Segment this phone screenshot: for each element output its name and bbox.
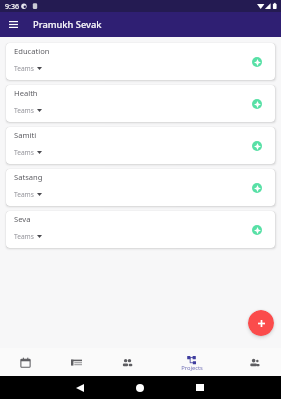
button[interactable]: Add team	[252, 99, 262, 109]
button[interactable]: Education	[6, 43, 275, 80]
button[interactable]: Home	[130, 376, 150, 399]
staticText: Health	[14, 88, 38, 98]
staticText: Pramukh Sevak	[33, 18, 102, 31]
staticText: Teams	[14, 64, 34, 73]
staticText: Teams	[14, 148, 34, 157]
button[interactable]: Recent apps	[190, 376, 210, 399]
button[interactable]: Add team	[252, 225, 262, 235]
button[interactable]: Add team	[252, 57, 262, 67]
button[interactable]: Seva	[6, 211, 275, 248]
button[interactable]: Add team	[252, 141, 262, 151]
staticText: Teams	[14, 232, 34, 241]
button[interactable]: Open navigation menu	[4, 12, 23, 37]
button[interactable]: Projects	[158, 348, 226, 376]
button[interactable]: Satsang	[6, 169, 275, 206]
button[interactable]: Members	[102, 348, 158, 376]
button[interactable]: Events	[0, 348, 51, 376]
staticText: Satsang	[14, 172, 43, 182]
button[interactable]: Tasks	[51, 348, 102, 376]
staticText: Teams	[14, 106, 34, 115]
button[interactable]: Groups	[226, 348, 281, 376]
staticText: 9:36	[5, 2, 19, 12]
button[interactable]: Add team	[252, 183, 262, 193]
staticText: Teams	[14, 190, 34, 199]
staticText: Education	[14, 46, 50, 56]
button[interactable]: Back	[70, 376, 90, 399]
staticText: Samiti	[14, 130, 37, 140]
button[interactable]: Samiti	[6, 127, 275, 164]
staticText: Seva	[14, 214, 31, 224]
staticText: Projects	[180, 364, 204, 372]
button[interactable]: Add project	[248, 310, 274, 336]
button[interactable]: Health	[6, 85, 275, 122]
